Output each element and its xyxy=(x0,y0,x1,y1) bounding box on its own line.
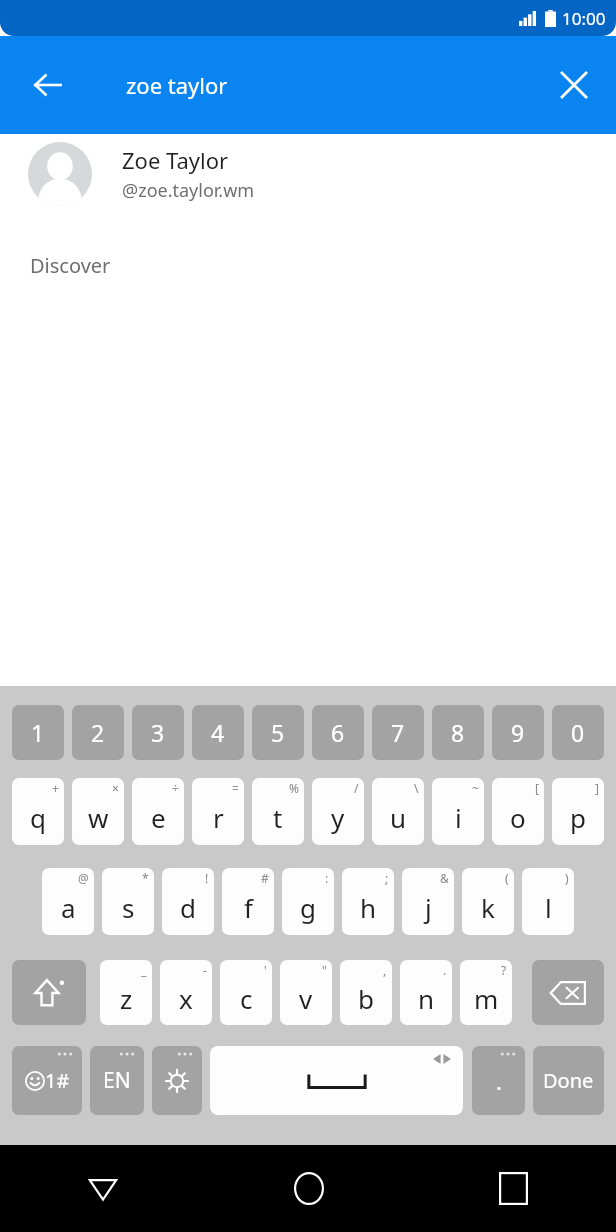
staticText: g xyxy=(300,890,316,925)
button[interactable]: Symbols and emoji xyxy=(12,1046,82,1115)
button[interactable]: _ xyxy=(100,960,152,1025)
staticText: = xyxy=(232,780,239,796)
staticText: . xyxy=(443,962,447,978)
button[interactable]: Shift xyxy=(12,960,86,1025)
button[interactable]: 1 xyxy=(12,705,64,760)
staticText: 0 xyxy=(571,717,585,748)
button[interactable]: Period xyxy=(472,1046,525,1115)
staticText: \ xyxy=(414,780,419,796)
staticText: 6 xyxy=(331,717,345,748)
button[interactable]: " xyxy=(280,960,332,1025)
staticText: × xyxy=(112,780,119,796)
button[interactable]: Clear search xyxy=(544,55,604,115)
button[interactable]: Space xyxy=(210,1046,463,1115)
staticText: c xyxy=(240,981,253,1016)
staticText: ' xyxy=(264,962,267,978)
button[interactable]: ~ xyxy=(432,778,484,845)
button[interactable]: 9 xyxy=(492,705,544,760)
button[interactable]: Recent apps xyxy=(411,1145,616,1232)
staticText: + xyxy=(52,780,59,796)
staticText: Zoe Taylor xyxy=(122,145,229,175)
staticText: 5 xyxy=(271,717,285,748)
staticText: " xyxy=(322,962,327,978)
button[interactable]: Backspace xyxy=(532,960,604,1025)
button[interactable]: + xyxy=(12,778,64,845)
staticText: z xyxy=(120,981,133,1016)
staticText: & xyxy=(440,870,449,886)
button[interactable]: - xyxy=(160,960,212,1025)
staticText: 4 xyxy=(211,717,225,748)
staticText: 2 xyxy=(91,717,105,748)
button[interactable]: Keyboard settings xyxy=(152,1046,202,1115)
button[interactable]: 7 xyxy=(372,705,424,760)
staticText: h xyxy=(360,890,377,925)
staticText: b xyxy=(358,981,374,1016)
staticText: t xyxy=(273,800,283,835)
staticText: r xyxy=(213,800,224,835)
button[interactable]: ? xyxy=(460,960,512,1025)
button[interactable]: 5 xyxy=(252,705,304,760)
button[interactable]: 0 xyxy=(552,705,604,760)
staticText: m xyxy=(474,981,499,1016)
button[interactable]: 2 xyxy=(72,705,124,760)
staticText: n xyxy=(418,981,435,1016)
button[interactable]: ÷ xyxy=(132,778,184,845)
staticText: v xyxy=(299,981,313,1016)
button[interactable]: 8 xyxy=(432,705,484,760)
staticText: : xyxy=(325,870,329,886)
staticText: ÷ xyxy=(172,780,179,796)
button[interactable]: / xyxy=(312,778,364,845)
button[interactable]: Zoe Taylor xyxy=(0,134,616,214)
button[interactable]: [ xyxy=(492,778,544,845)
staticText: 8 xyxy=(451,717,465,748)
staticText: [ xyxy=(535,780,539,796)
staticText: 3 xyxy=(151,717,165,748)
button[interactable]: Back xyxy=(0,1145,206,1232)
staticText: - xyxy=(203,962,207,978)
button[interactable]: , xyxy=(340,960,392,1025)
staticText: Discover xyxy=(30,252,111,279)
staticText: * xyxy=(142,870,149,886)
staticText: e xyxy=(151,800,166,835)
staticText: q xyxy=(30,800,46,835)
button[interactable]: Done xyxy=(533,1046,604,1115)
button[interactable]: = xyxy=(192,778,244,845)
staticText: % xyxy=(289,780,299,796)
staticText: ( xyxy=(505,870,509,886)
button[interactable]: Home xyxy=(206,1145,411,1232)
button[interactable]: % xyxy=(252,778,304,845)
staticText: f xyxy=(244,890,253,925)
button[interactable]: & xyxy=(402,868,454,935)
staticText: 1# xyxy=(45,1067,70,1094)
staticText: w xyxy=(88,800,109,835)
staticText: 9 xyxy=(511,717,525,748)
button[interactable]: 4 xyxy=(192,705,244,760)
button[interactable]: : xyxy=(282,868,334,935)
button[interactable]: ( xyxy=(462,868,514,935)
button[interactable]: × xyxy=(72,778,124,845)
staticText: _ xyxy=(141,962,147,978)
button[interactable]: . xyxy=(400,960,452,1025)
button[interactable]: ! xyxy=(162,868,214,935)
button[interactable]: 3 xyxy=(132,705,184,760)
button[interactable]: \ xyxy=(372,778,424,845)
button[interactable]: @ xyxy=(42,868,94,935)
button[interactable]: EN xyxy=(90,1046,144,1115)
button[interactable]: ; xyxy=(342,868,394,935)
button[interactable]: ] xyxy=(552,778,604,845)
button[interactable]: ) xyxy=(522,868,574,935)
staticText: s xyxy=(122,890,135,925)
staticText: ; xyxy=(385,870,389,886)
button[interactable]: ' xyxy=(220,960,272,1025)
staticText: ~ xyxy=(472,780,479,796)
button[interactable]: Back xyxy=(14,51,82,119)
button[interactable]: * xyxy=(102,868,154,935)
button[interactable]: # xyxy=(222,868,274,935)
staticText: ? xyxy=(501,962,507,978)
staticText: a xyxy=(61,890,76,925)
staticText: p xyxy=(570,800,586,835)
staticText: 1 xyxy=(31,717,45,748)
staticText: ] xyxy=(595,780,599,796)
staticText: k xyxy=(481,890,495,925)
button[interactable]: 6 xyxy=(312,705,364,760)
